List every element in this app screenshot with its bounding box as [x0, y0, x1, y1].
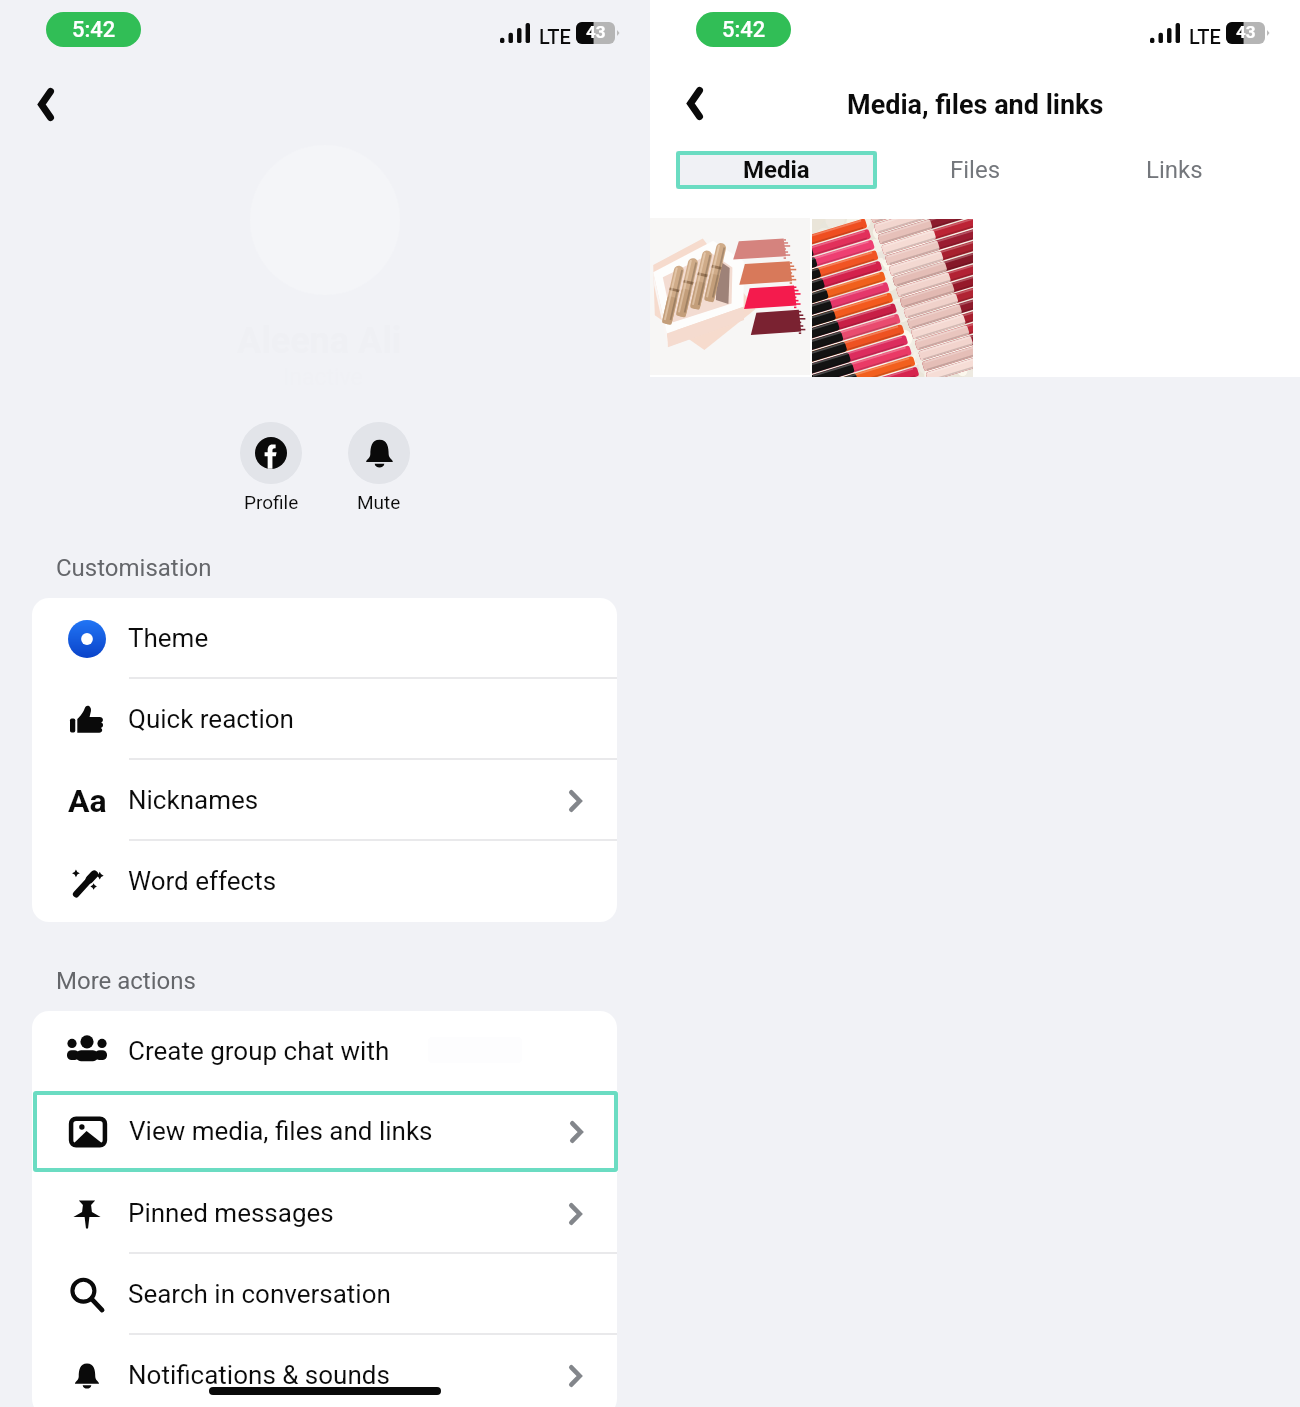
button[interactable]: Search in conversation: [32, 1254, 617, 1335]
button[interactable]: Create group chat with: [32, 1011, 617, 1092]
button[interactable]: Notifications & sounds: [32, 1335, 617, 1407]
staticText: Mute: [357, 491, 401, 513]
staticText: Pinned messages: [128, 1198, 334, 1228]
button[interactable]: Back: [17, 75, 75, 133]
staticText: Customisation: [56, 554, 212, 582]
staticText: Nicknames: [128, 785, 259, 815]
button[interactable]: Mute: [348, 422, 410, 513]
staticText: Search in conversation: [128, 1279, 391, 1309]
staticText: Aa: [68, 782, 107, 820]
staticText: View media, files and links: [129, 1116, 433, 1146]
staticText: 43: [1236, 22, 1256, 42]
button[interactable]: Profile: [240, 422, 302, 513]
button[interactable]: Links: [1114, 151, 1234, 189]
staticText: Media, files and links: [847, 89, 1104, 121]
staticText: Create group chat with: [128, 1036, 390, 1066]
button[interactable]: Theme: [32, 598, 617, 679]
staticText: Files: [950, 156, 1001, 184]
staticText: LTE: [539, 25, 571, 48]
button[interactable]: Photo 1: [650, 218, 810, 375]
button[interactable]: Pinned messages: [32, 1173, 617, 1254]
staticText: More actions: [56, 967, 196, 995]
staticText: 5:42: [72, 17, 116, 43]
staticText: 5:42: [722, 17, 766, 43]
button[interactable]: View media, files and links: [33, 1091, 618, 1172]
button[interactable]: Aa: [32, 760, 617, 841]
staticText: Notifications & sounds: [128, 1360, 390, 1390]
staticText: Theme: [128, 623, 209, 653]
staticText: Media: [743, 156, 810, 184]
button[interactable]: Word effects: [32, 841, 617, 922]
button[interactable]: Quick reaction: [32, 679, 617, 760]
staticText: 43: [586, 22, 606, 42]
staticText: Links: [1146, 156, 1203, 184]
button[interactable]: Files: [915, 151, 1035, 189]
button[interactable]: Back: [666, 74, 724, 132]
button[interactable]: Media: [676, 151, 877, 189]
staticText: Profile: [244, 491, 299, 513]
staticText: LTE: [1189, 25, 1221, 48]
button[interactable]: Photo 2: [812, 219, 973, 377]
staticText: Quick reaction: [128, 704, 294, 734]
staticText: Word effects: [128, 866, 277, 896]
